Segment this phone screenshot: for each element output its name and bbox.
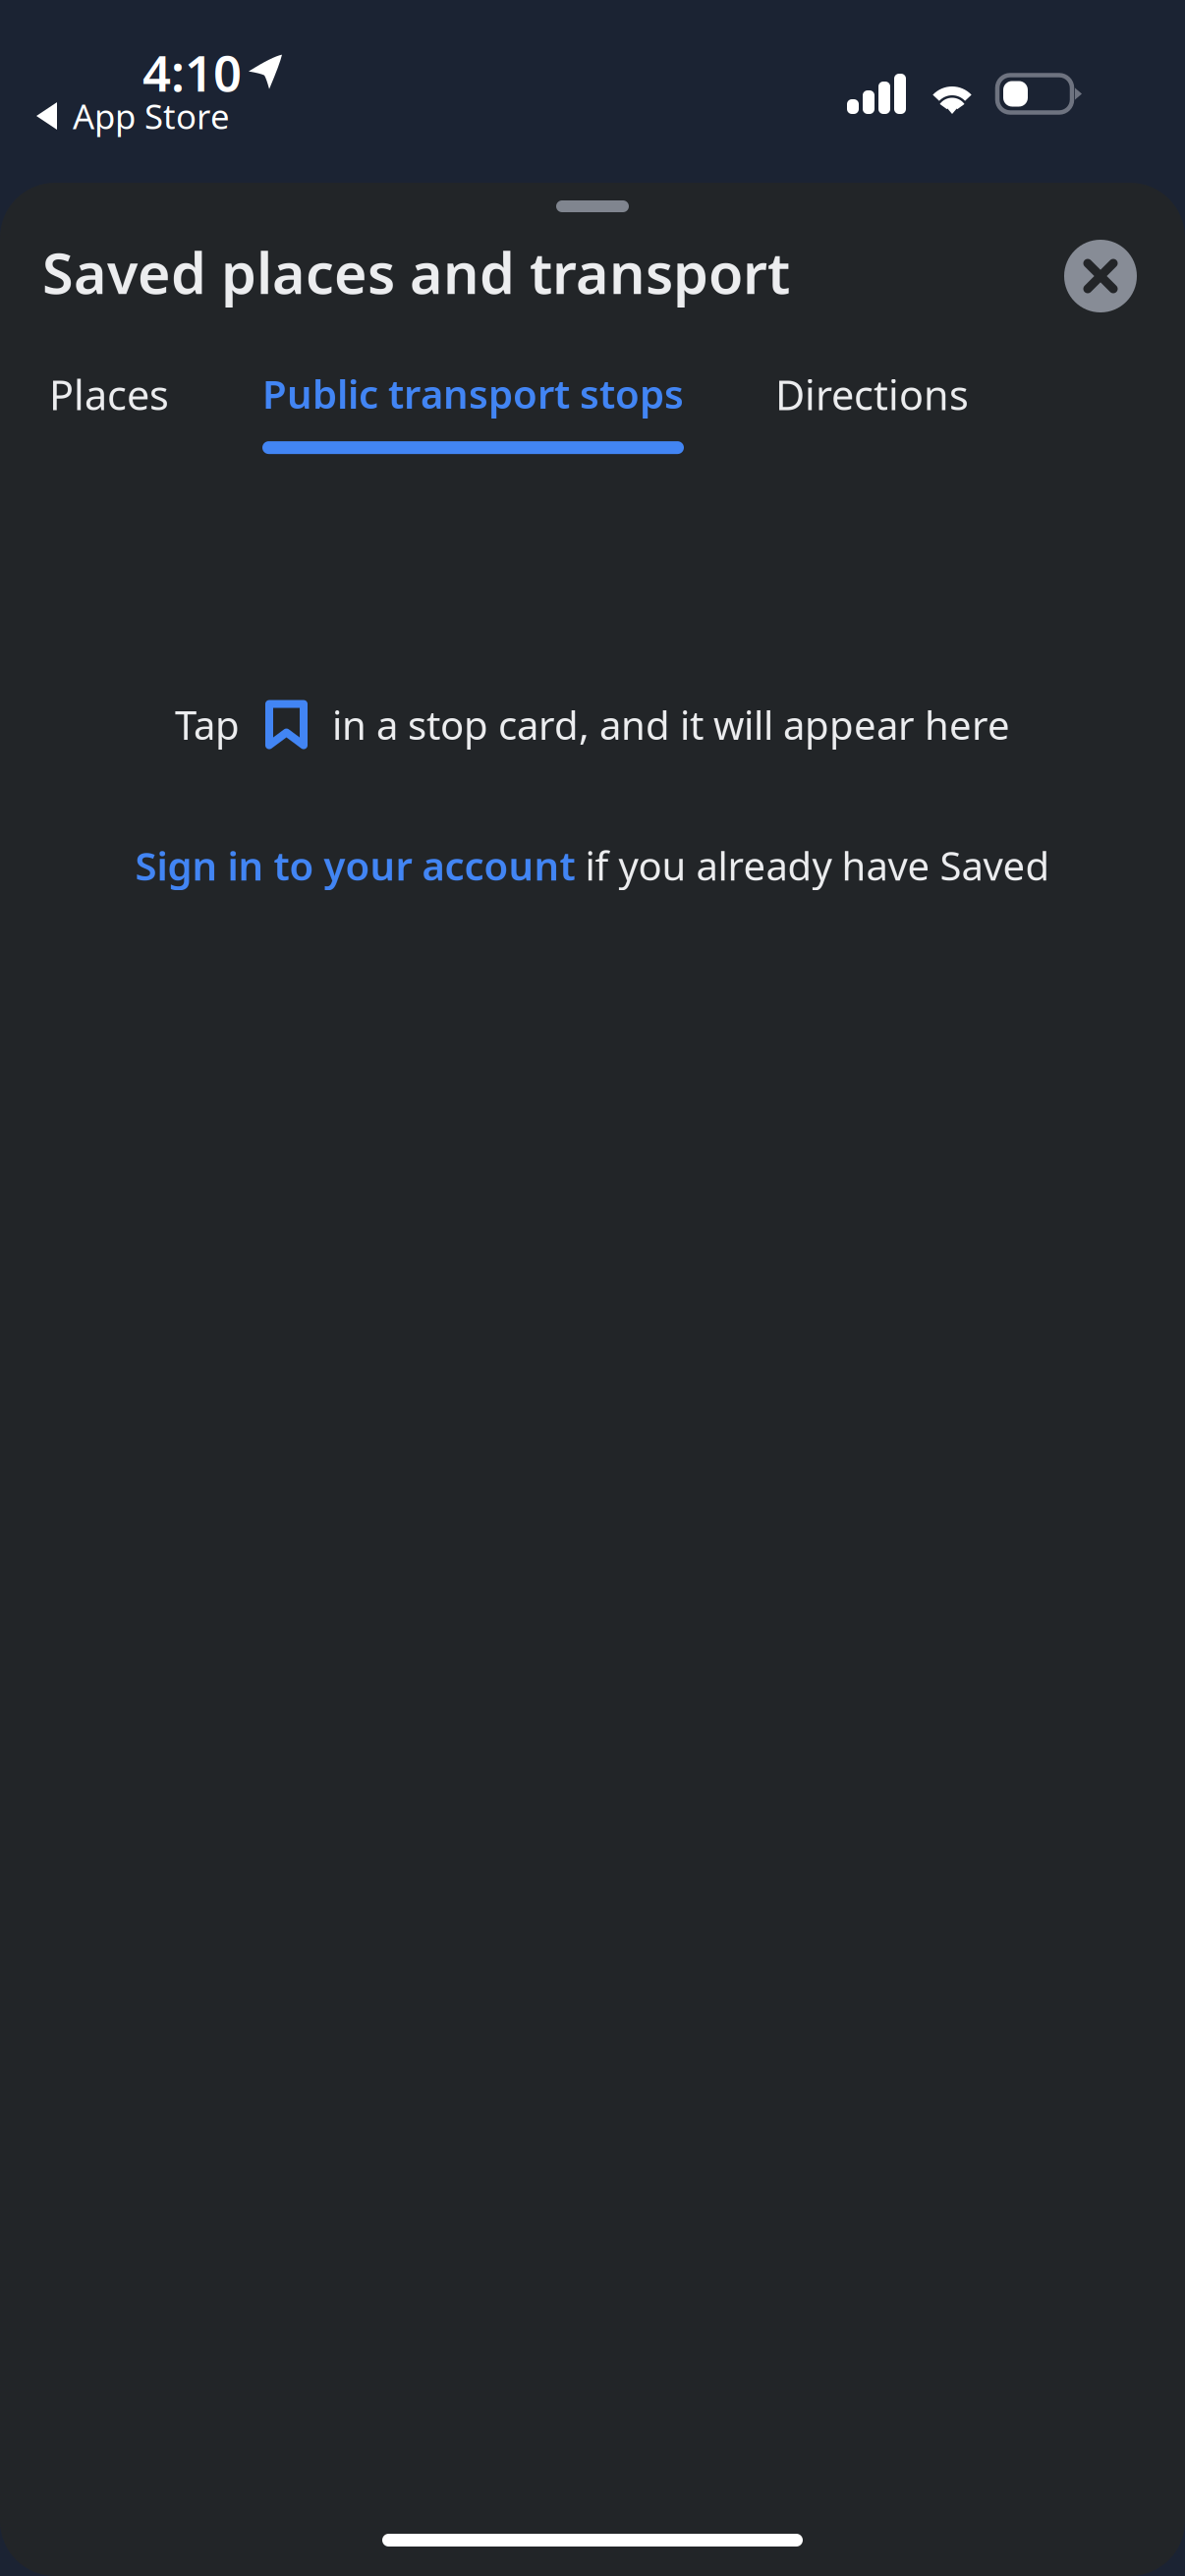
staticText: Directions	[775, 367, 969, 421]
staticText: Public transport stops	[262, 367, 684, 420]
staticText: Places	[49, 367, 169, 421]
staticText: in a stop card, and it will appear here	[332, 699, 1010, 751]
staticText: 4:10	[142, 39, 242, 105]
button[interactable]: Places	[49, 367, 169, 456]
staticText: App Store	[73, 93, 230, 139]
button[interactable]: Close	[1051, 227, 1150, 325]
button[interactable]: Public transport stops	[262, 367, 684, 454]
button[interactable]: Directions	[775, 367, 969, 456]
button[interactable]: Sign in to your account	[135, 839, 575, 891]
staticText: Tap	[175, 699, 240, 751]
staticText: Saved places and transport	[42, 235, 790, 310]
staticText: Sign in to your account	[135, 839, 575, 891]
staticText: if you already have Saved	[575, 839, 1050, 891]
